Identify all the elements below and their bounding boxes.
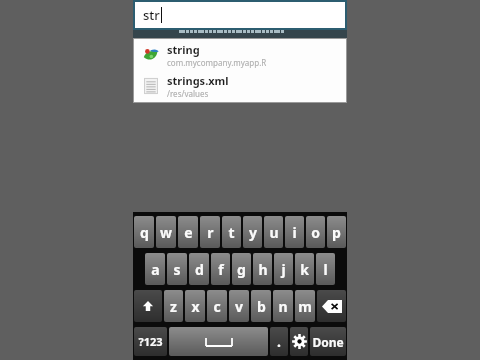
- staticText: l: [323, 260, 328, 279]
- button[interactable]: ?123: [134, 327, 167, 356]
- staticText: p: [332, 223, 341, 242]
- button[interactable]: i: [285, 216, 304, 248]
- staticText: a: [151, 260, 160, 279]
- button[interactable]: space: [169, 327, 268, 356]
- staticText: c: [213, 297, 221, 316]
- staticText: q: [140, 223, 149, 242]
- button[interactable]: str: [135, 2, 345, 28]
- button[interactable]: m: [295, 290, 315, 322]
- staticText: v: [235, 297, 243, 316]
- button[interactable]: n: [273, 290, 293, 322]
- staticText: f: [218, 260, 224, 279]
- button[interactable]: r: [200, 216, 220, 248]
- staticText: e: [184, 223, 193, 242]
- staticText: x: [191, 297, 200, 316]
- staticText: o: [311, 223, 320, 242]
- button[interactable]: e: [178, 216, 198, 248]
- button[interactable]: w: [156, 216, 176, 248]
- button[interactable]: Shift: [134, 290, 162, 322]
- button[interactable]: f: [211, 253, 230, 285]
- staticText: n: [278, 297, 288, 316]
- staticText: u: [269, 223, 279, 242]
- staticText: s: [173, 260, 181, 279]
- staticText: j: [281, 260, 286, 279]
- staticText: m: [298, 297, 312, 316]
- staticText: strings.xml: [167, 73, 229, 88]
- button[interactable]: z: [164, 290, 183, 322]
- staticText: i: [292, 223, 297, 242]
- button[interactable]: d: [189, 253, 209, 285]
- button[interactable]: g: [232, 253, 251, 285]
- button[interactable]: .: [270, 327, 288, 356]
- button[interactable]: b: [251, 290, 271, 322]
- staticText: r: [207, 223, 214, 242]
- button[interactable]: s: [167, 253, 187, 285]
- button[interactable]: h: [253, 253, 272, 285]
- staticText: w: [160, 223, 172, 242]
- staticText: y: [249, 223, 257, 242]
- button[interactable]: string: [134, 39, 346, 70]
- button[interactable]: o: [306, 216, 325, 248]
- button[interactable]: y: [243, 216, 262, 248]
- button[interactable]: strings.xml: [134, 70, 346, 102]
- button[interactable]: x: [185, 290, 205, 322]
- button[interactable]: p: [327, 216, 346, 248]
- staticText: g: [237, 260, 246, 279]
- staticText: ?123: [138, 334, 163, 349]
- staticText: h: [258, 260, 268, 279]
- button[interactable]: j: [274, 253, 293, 285]
- staticText: str: [143, 6, 160, 24]
- button[interactable]: c: [207, 290, 227, 322]
- button[interactable]: l: [316, 253, 335, 285]
- staticText: d: [195, 260, 204, 279]
- staticText: .: [277, 332, 281, 351]
- button[interactable]: a: [145, 253, 165, 285]
- button[interactable]: v: [229, 290, 249, 322]
- staticText: com.mycompany.myapp.R: [167, 57, 267, 68]
- button[interactable]: k: [295, 253, 314, 285]
- button[interactable]: q: [134, 216, 154, 248]
- staticText: b: [257, 297, 266, 316]
- staticText: /res/values: [167, 88, 209, 99]
- button[interactable]: u: [264, 216, 283, 248]
- button[interactable]: t: [222, 216, 241, 248]
- button[interactable]: Settings: [290, 327, 308, 356]
- staticText: string: [167, 42, 200, 57]
- staticText: k: [300, 260, 309, 279]
- staticText: z: [170, 297, 177, 316]
- button[interactable]: Delete: [317, 290, 346, 322]
- button[interactable]: Done: [310, 327, 346, 356]
- staticText: Done: [312, 334, 344, 350]
- staticText: t: [228, 223, 235, 242]
